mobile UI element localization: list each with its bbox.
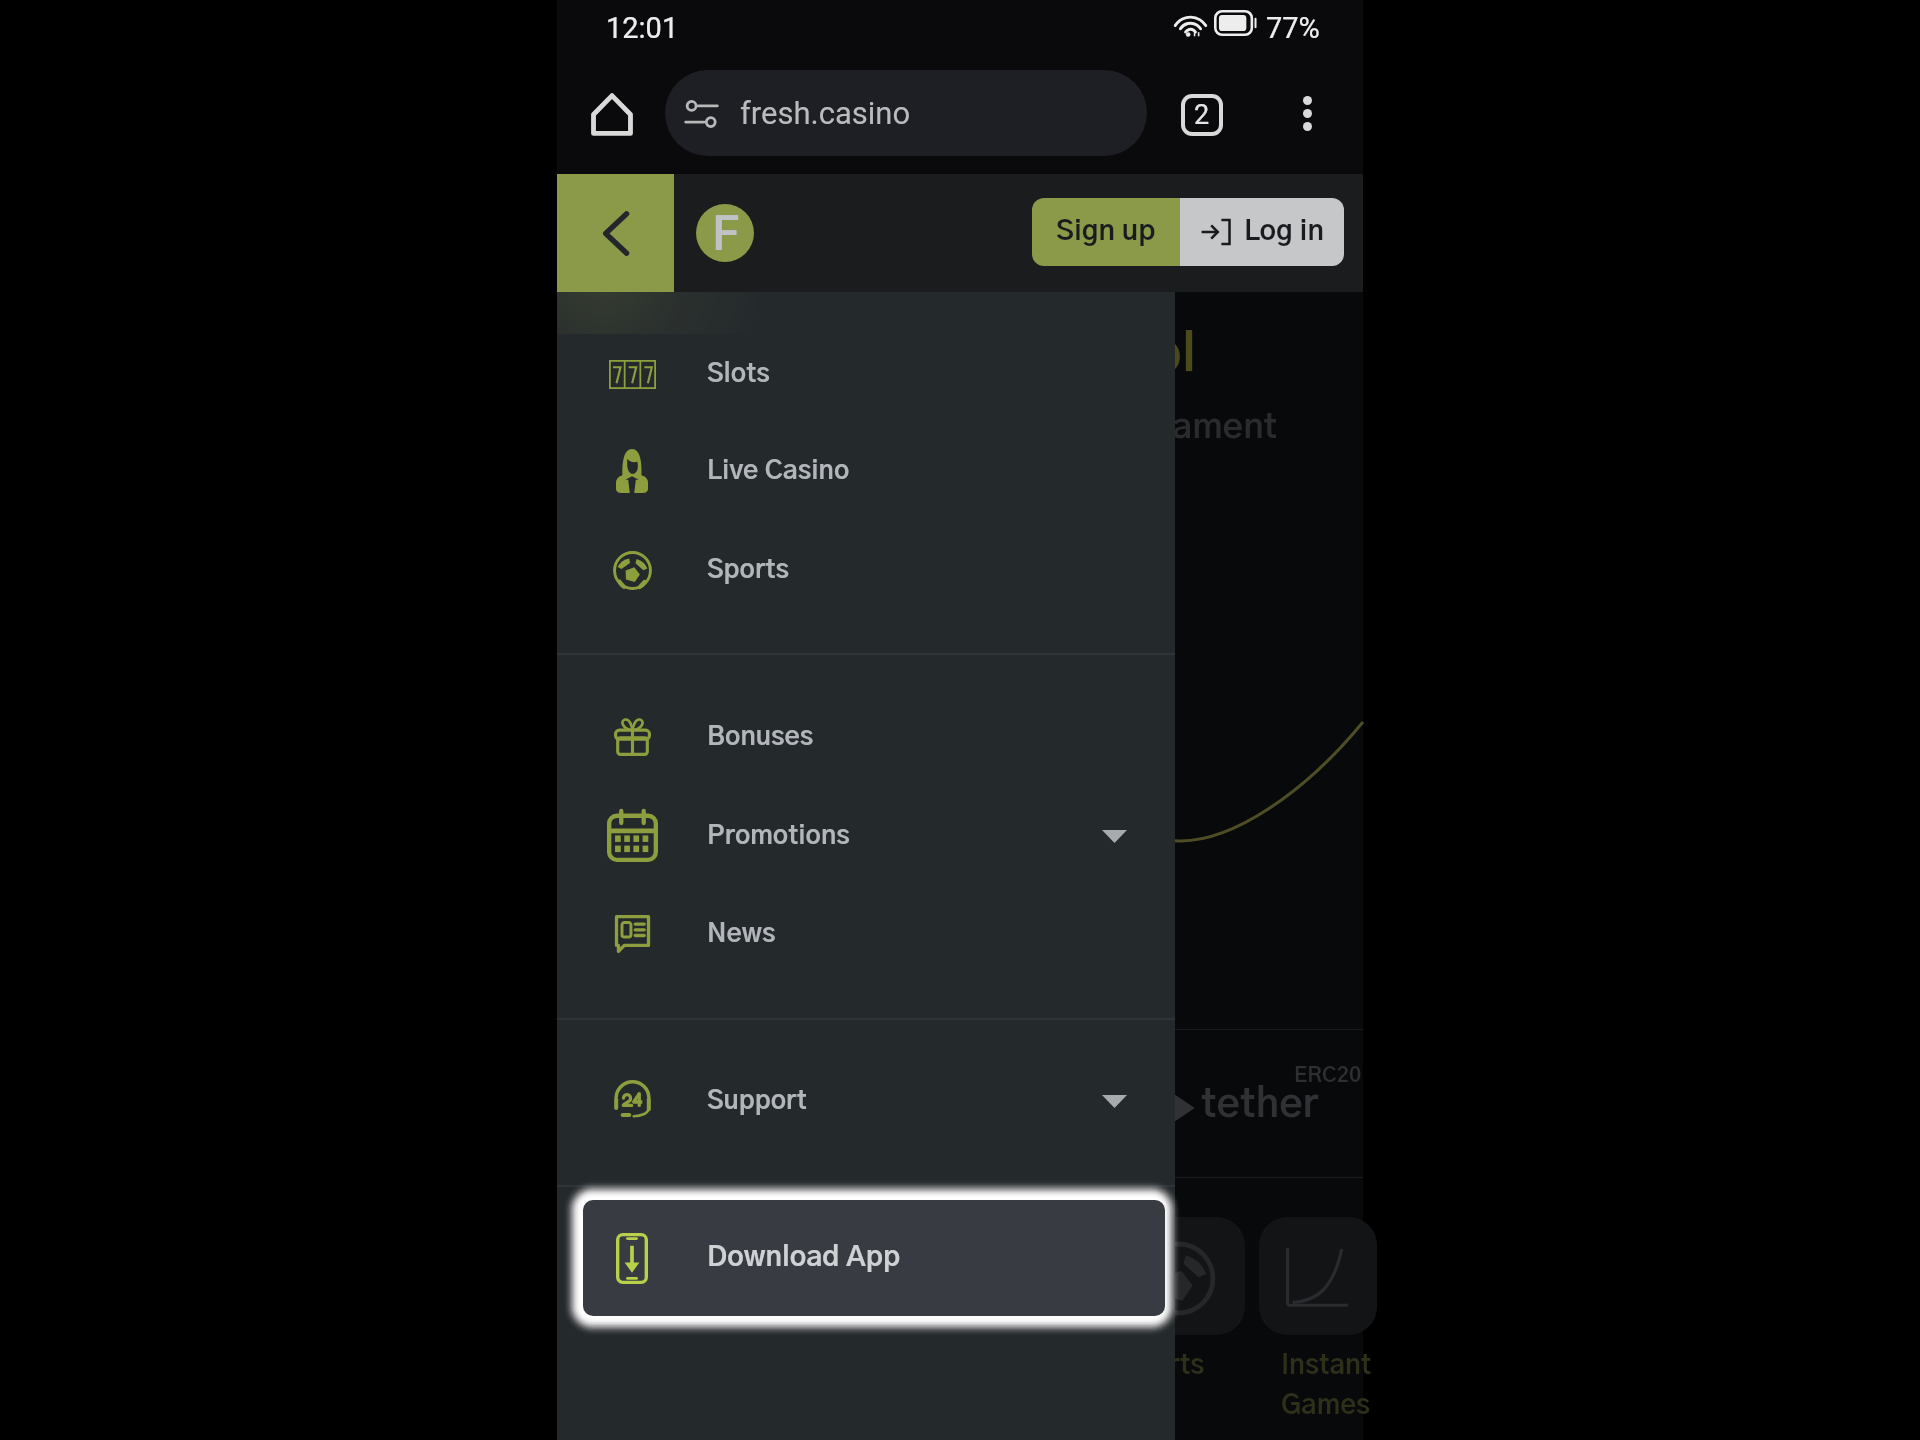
staticText: Promotions [707,823,850,849]
staticText: tether [1201,1085,1319,1125]
button[interactable]: Sports [557,523,1175,617]
button[interactable]: Support [557,1054,1175,1148]
staticText: Live Casino [707,458,850,484]
staticText: orts [1153,1352,1205,1379]
staticText: Support [707,1088,807,1114]
button[interactable]: News [557,887,1175,981]
staticText: News [707,921,776,947]
button[interactable]: More options [1271,77,1343,149]
button[interactable]: fresh.casino [665,70,1147,156]
button[interactable]: Log in [1180,198,1344,266]
button[interactable]: Home [572,74,652,154]
staticText: Instant Games [1281,1352,1372,1419]
button[interactable]: F [696,204,754,262]
button[interactable]: Tabs [1166,79,1238,151]
staticText: Log in [1244,218,1324,246]
button[interactable]: Bonuses [557,690,1175,784]
button[interactable]: Slots [557,327,1175,421]
button[interactable]: Promotions [557,789,1175,883]
staticText: F [712,214,739,259]
staticText: Bonuses [707,724,814,750]
staticText: 12:01 [606,11,679,45]
staticText: Download App [707,1244,901,1272]
staticText: 77% [1266,11,1320,45]
button[interactable]: Sign up [1032,198,1180,266]
staticText: ament [1172,410,1278,445]
staticText: 2 [1194,99,1210,131]
staticText: Sign up [1056,218,1156,246]
button[interactable]: Live Casino [557,424,1175,518]
button[interactable]: Download App [583,1200,1165,1316]
staticText: ol [1151,330,1197,382]
staticText: fresh.casino [740,95,911,131]
staticText: Slots [707,361,770,387]
button[interactable]: Back [557,174,674,292]
staticText: ERC20 [1294,1065,1362,1086]
staticText: Sports [707,557,790,583]
